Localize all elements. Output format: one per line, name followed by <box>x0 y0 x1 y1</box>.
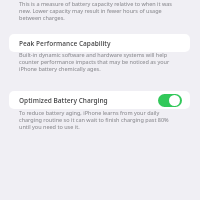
staticText: Optimized Battery Charging <box>19 96 108 105</box>
button[interactable]: Optimized Battery Charging <box>158 94 182 107</box>
staticText: Built-in dynamic software and hardware s… <box>19 52 181 73</box>
staticText: This is a measure of battery capacity re… <box>19 1 181 22</box>
button[interactable]: Optimized Battery Charging <box>9 91 190 109</box>
staticText: Peak Performance Capability <box>19 39 111 48</box>
button[interactable]: Peak Performance Capability <box>9 34 190 52</box>
staticText: To reduce battery aging, iPhone learns f… <box>19 110 181 131</box>
